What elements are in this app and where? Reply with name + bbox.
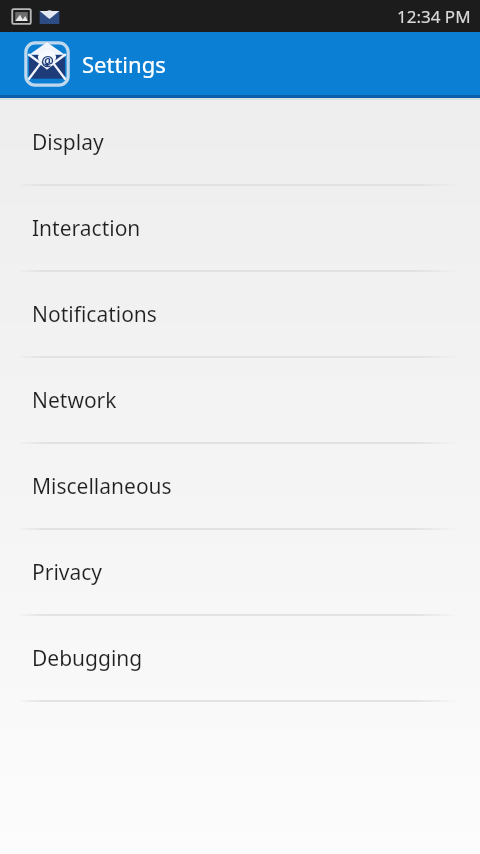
staticText: Display [32, 128, 104, 157]
button[interactable]: Interaction [0, 186, 480, 272]
button[interactable]: Display [0, 100, 480, 186]
staticText: Miscellaneous [32, 472, 172, 501]
staticText: Network [32, 386, 117, 415]
staticText: Settings [82, 49, 166, 79]
staticText: Notifications [32, 300, 157, 329]
staticText: Privacy [32, 558, 103, 587]
button[interactable]: Notifications [0, 272, 480, 358]
staticText: Debugging [32, 644, 143, 673]
button[interactable]: Network [0, 358, 480, 444]
staticText: @ [41, 51, 54, 70]
staticText: Interaction [32, 214, 141, 243]
button[interactable]: Miscellaneous [0, 444, 480, 530]
button[interactable]: Debugging [0, 616, 480, 702]
button[interactable]: Privacy [0, 530, 480, 616]
other: App icon [24, 41, 70, 87]
staticText: 12:34 PM [397, 5, 471, 28]
